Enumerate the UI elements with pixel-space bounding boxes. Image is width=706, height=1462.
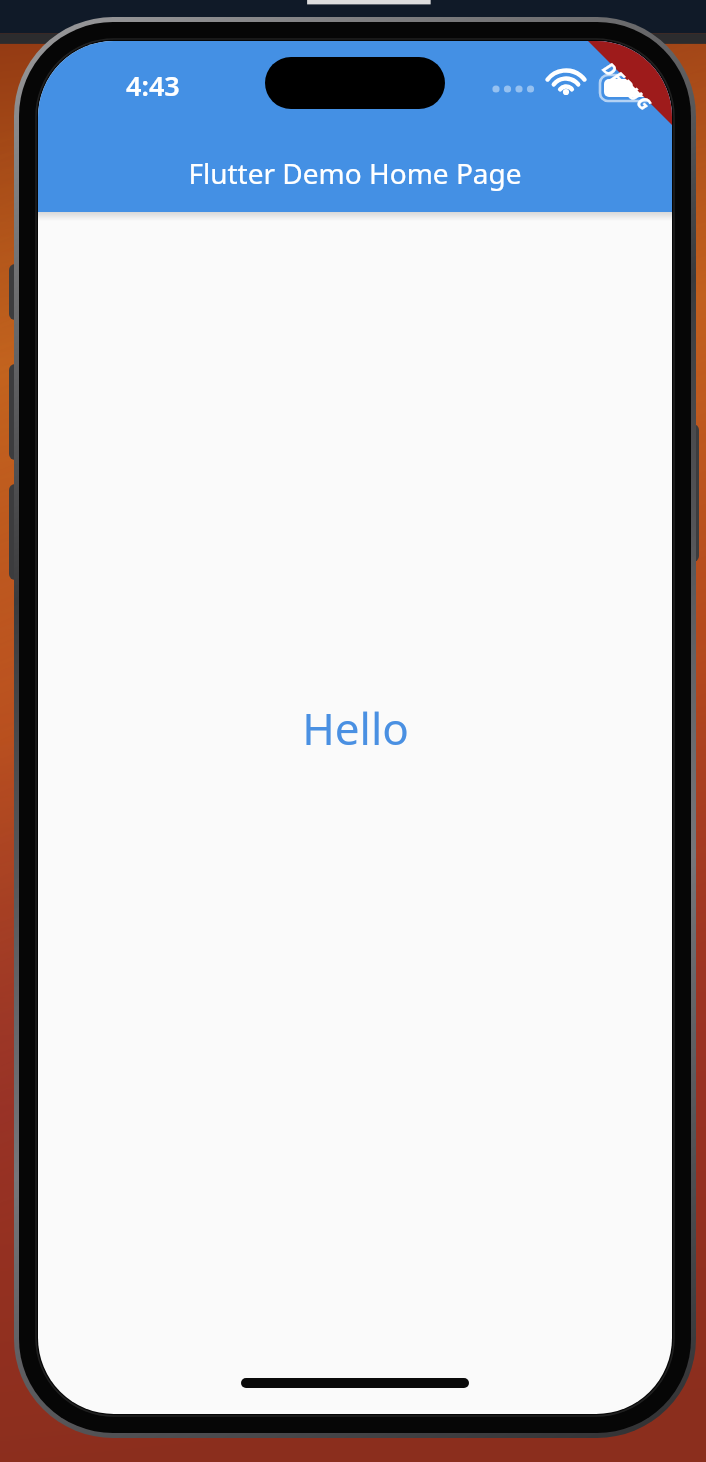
staticText: DEBUG	[598, 57, 657, 116]
staticText: 4:43	[126, 67, 180, 104]
staticText: Hello	[302, 698, 409, 758]
button[interactable]: 4:43	[38, 41, 672, 212]
staticText: Flutter Demo Home Page	[188, 154, 522, 192]
other: Debug banner	[522, 41, 672, 191]
